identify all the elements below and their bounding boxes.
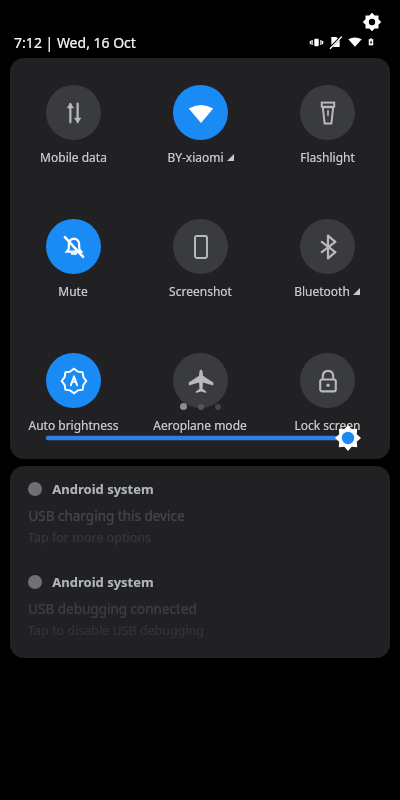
staticText: Mute	[58, 283, 88, 299]
staticText: Android system	[52, 573, 154, 591]
staticText: Tap to disable USB debugging	[28, 622, 204, 639]
staticText: Lock screen	[294, 417, 361, 433]
button[interactable]: Flashlight	[265, 84, 389, 166]
staticText: Mobile data	[40, 149, 107, 165]
staticText: Aeroplane mode	[153, 417, 247, 433]
staticText: Screenshot	[169, 283, 232, 299]
staticText: BY-xiaomi	[167, 149, 224, 165]
button[interactable]: Mobile data	[11, 84, 135, 166]
staticText: Flashlight	[300, 149, 355, 165]
button[interactable]: Auto brightness	[11, 352, 135, 434]
button[interactable]: Lock screen	[265, 352, 389, 434]
button[interactable]: Screenshot	[138, 218, 262, 300]
button[interactable]: Aeroplane mode	[138, 352, 262, 434]
staticText: USB charging this device	[28, 507, 185, 525]
button[interactable]: Android system	[10, 466, 390, 550]
staticText: 7:12 | Wed, 16 Oct	[14, 33, 136, 52]
staticText: USB debugging connected	[28, 600, 197, 618]
button[interactable]: Brightness	[38, 418, 362, 458]
button[interactable]: BY-xiaomi	[138, 84, 262, 166]
button[interactable]: Android system	[10, 559, 390, 643]
staticText: Android system	[52, 480, 154, 498]
staticText: Bluetooth	[294, 283, 350, 299]
button[interactable]: Settings	[362, 12, 382, 32]
staticText: Auto brightness	[28, 417, 119, 433]
staticText: Tap for more options	[28, 529, 151, 546]
button[interactable]: Mute	[11, 218, 135, 300]
button[interactable]: Bluetooth	[265, 218, 389, 300]
